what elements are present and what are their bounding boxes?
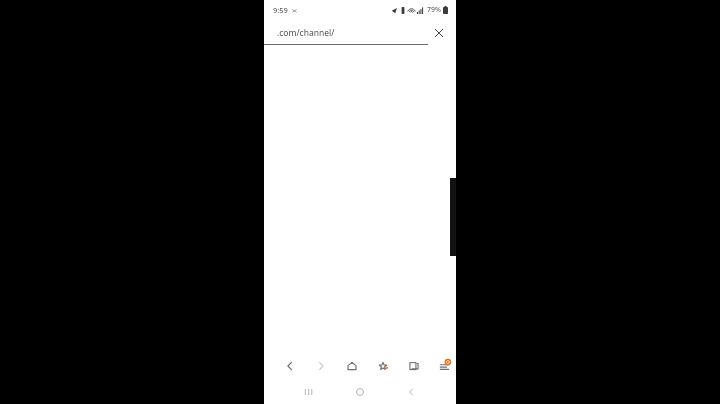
button[interactable]: Home	[351, 383, 369, 401]
staticText: 9:59	[273, 5, 288, 15]
button[interactable]: Back	[402, 383, 420, 401]
button[interactable]: Clear address	[432, 26, 446, 40]
button[interactable]: Forward	[313, 358, 329, 374]
button[interactable]: Recents	[300, 383, 318, 401]
button[interactable]: Menu	[437, 359, 451, 373]
button[interactable]: Home	[344, 358, 360, 374]
button[interactable]: Bookmarks	[375, 358, 391, 374]
button[interactable]: .com/channel/UCt2kiibyVskY6pCzwC_Bu-w	[277, 27, 426, 39]
staticText: 79%	[427, 5, 441, 15]
button[interactable]: Back	[282, 358, 298, 374]
button[interactable]: Tabs	[406, 358, 422, 374]
